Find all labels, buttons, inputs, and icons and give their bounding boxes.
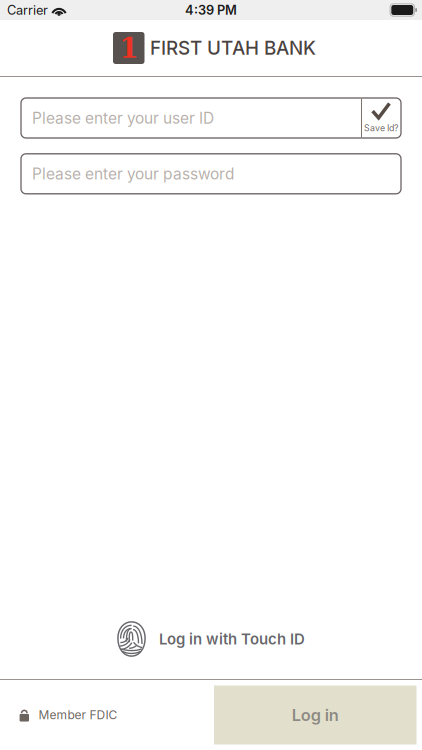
staticText: Please enter your user ID [32,109,214,127]
staticText: Log in [292,705,339,725]
button[interactable]: Save Id? [361,99,401,137]
staticText: 1 [119,32,138,64]
staticText: FIRST UTAH BANK [150,37,316,59]
button[interactable]: Log in with Touch ID [117,621,305,657]
staticText: 4:39 PM [185,2,237,18]
button[interactable]: Log in [214,685,416,744]
staticText: Carrier [7,2,48,18]
staticText: Log in with Touch ID [159,630,305,648]
staticText: Member FDIC [39,708,118,722]
staticText: Save Id? [364,123,398,133]
staticText: Please enter your password [32,164,234,183]
